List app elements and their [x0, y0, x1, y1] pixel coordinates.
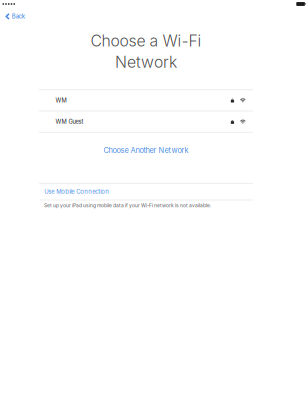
staticText: Choose Another Network	[103, 146, 188, 155]
staticText: Use Mobile Connection	[44, 188, 109, 195]
staticText: Choose a Wi-Fi	[90, 31, 201, 50]
staticText: WM Guest	[55, 118, 83, 125]
button[interactable]: WM Guest	[39, 111, 253, 132]
button[interactable]: Back	[0, 12, 25, 20]
button[interactable]: Use Mobile Connection	[39, 184, 253, 199]
staticText: WM	[55, 97, 66, 104]
button[interactable]: WM	[39, 90, 253, 111]
staticText: Network	[115, 52, 177, 71]
staticText: Set up your iPad using mobile data if yo…	[44, 202, 211, 208]
button[interactable]: Choose Another Network	[39, 144, 253, 156]
staticText: Back	[12, 13, 25, 20]
